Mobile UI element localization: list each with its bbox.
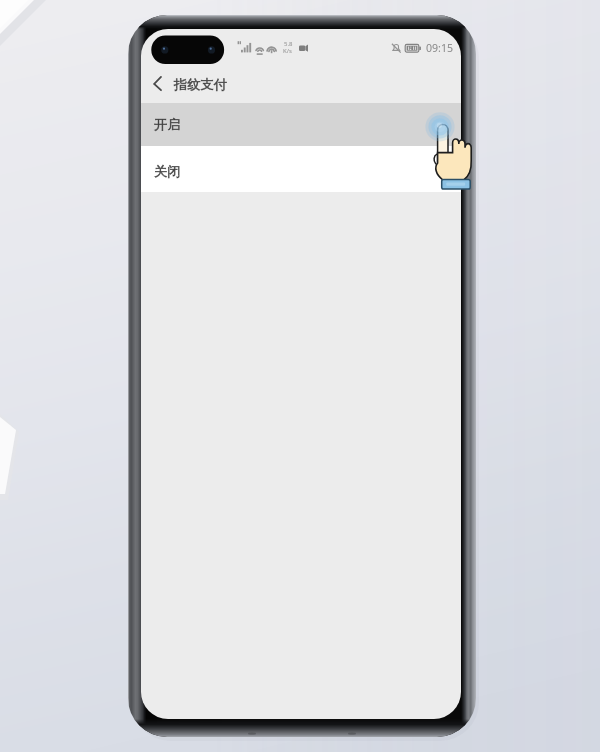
staticText: K/s <box>283 47 292 55</box>
staticText: 5.8 <box>284 40 293 48</box>
staticText: 开启 <box>154 116 181 133</box>
staticText: 指纹支付 <box>174 76 227 93</box>
staticText: 开启 <box>154 116 181 133</box>
button[interactable]: Back <box>141 67 175 101</box>
staticText: 09:15 <box>426 41 454 55</box>
staticText: 关闭 <box>154 163 181 180</box>
button[interactable]: 关闭 <box>141 146 461 192</box>
staticText: 关闭 <box>154 163 181 180</box>
staticText: 指纹支付 <box>174 76 227 93</box>
button[interactable]: 开启 <box>141 103 461 146</box>
